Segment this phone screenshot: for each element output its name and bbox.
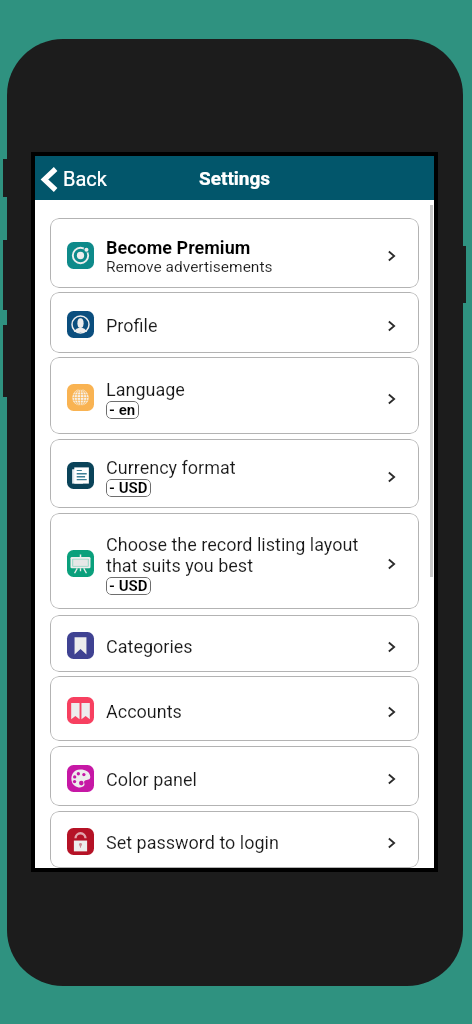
button[interactable]: Choose the record listing layout — [50, 513, 419, 609]
staticText: Back — [63, 167, 107, 190]
staticText: Color panel — [106, 769, 197, 790]
staticText: Become Premium — [106, 237, 251, 258]
staticText: - USD — [109, 577, 148, 595]
button[interactable]: Accounts — [50, 676, 419, 741]
button[interactable]: Set password to login — [50, 811, 419, 868]
button[interactable]: Color panel — [50, 746, 419, 806]
button[interactable]: Language — [50, 357, 419, 434]
staticText: Categories — [106, 636, 193, 657]
button[interactable]: Become Premium — [50, 218, 419, 288]
staticText: - USD — [109, 479, 148, 497]
button[interactable]: Back — [35, 160, 117, 197]
staticText: Choose the record listing layout — [106, 534, 359, 555]
button[interactable]: Categories — [50, 615, 419, 672]
staticText: Settings — [199, 167, 271, 189]
staticText: Remove advertisements — [106, 258, 273, 276]
staticText: - en — [109, 401, 136, 419]
staticText: Language — [106, 379, 185, 400]
staticText: Profile — [106, 315, 158, 336]
button[interactable]: Profile — [50, 292, 419, 353]
staticText: that suits you best — [106, 555, 254, 576]
staticText: Currency format — [106, 457, 236, 478]
button[interactable]: Currency format — [50, 439, 419, 508]
staticText: Set password to login — [106, 832, 279, 853]
staticText: Accounts — [106, 701, 182, 722]
